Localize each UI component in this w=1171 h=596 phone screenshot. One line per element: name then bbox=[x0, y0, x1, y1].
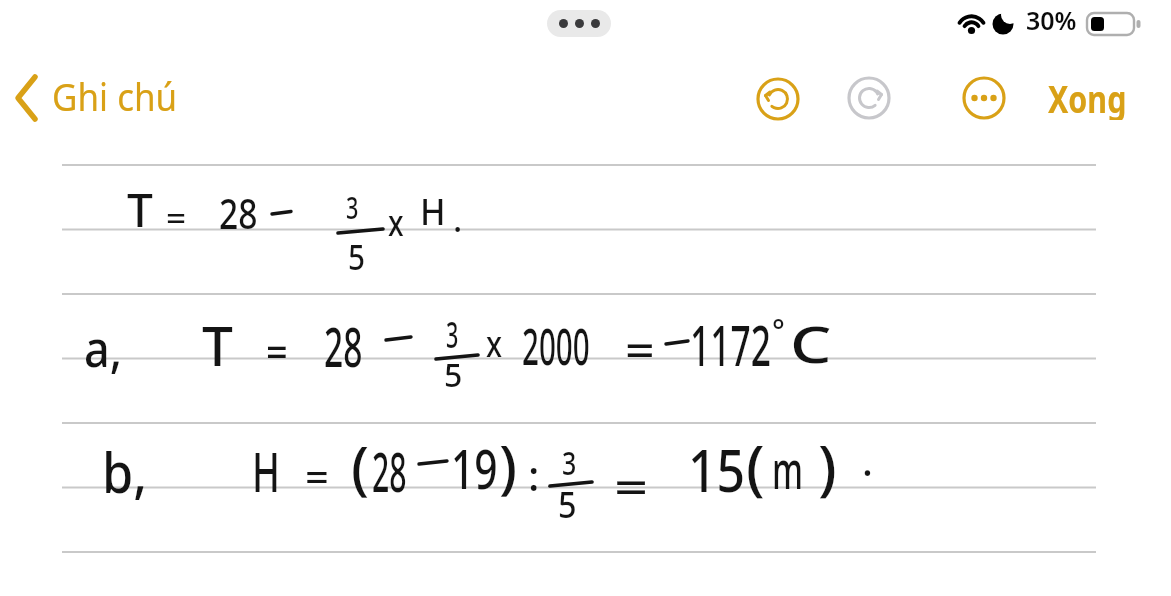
staticText: 5 bbox=[348, 233, 366, 281]
staticText: C bbox=[790, 308, 832, 377]
staticText: ( bbox=[746, 425, 765, 507]
staticText: = bbox=[625, 318, 655, 381]
staticText: ° bbox=[772, 310, 785, 351]
button[interactable] bbox=[847, 76, 891, 120]
staticText: 5 bbox=[558, 480, 577, 529]
button[interactable] bbox=[756, 77, 800, 121]
staticText: = bbox=[266, 322, 289, 379]
staticText: Xong bbox=[1048, 72, 1126, 120]
staticText: = bbox=[166, 196, 187, 240]
button[interactable]: Xong bbox=[1040, 72, 1140, 120]
staticText: m bbox=[772, 433, 803, 504]
staticText: ) bbox=[499, 426, 518, 505]
staticText: x bbox=[388, 198, 404, 247]
staticText: x bbox=[486, 319, 502, 368]
staticText: 15 bbox=[688, 430, 746, 509]
staticText: 5 bbox=[444, 353, 463, 397]
staticText: 28 bbox=[219, 185, 257, 241]
staticText: H bbox=[252, 433, 281, 508]
staticText: a, bbox=[84, 314, 123, 382]
staticText: 30% bbox=[1026, 3, 1077, 37]
staticText: . bbox=[453, 196, 463, 242]
staticText: 3 bbox=[346, 186, 359, 228]
staticText: 28 bbox=[372, 433, 407, 508]
staticText: T bbox=[127, 178, 153, 241]
staticText: H bbox=[420, 187, 446, 236]
staticText: 1172 bbox=[690, 305, 771, 383]
staticText: 28 bbox=[324, 308, 362, 383]
staticText: . bbox=[862, 433, 873, 487]
staticText: 19 bbox=[451, 430, 498, 505]
staticText: 3 bbox=[446, 310, 459, 359]
staticText: T bbox=[202, 307, 233, 382]
staticText: : bbox=[528, 446, 540, 503]
button[interactable]: Ghi chú bbox=[10, 68, 190, 124]
staticText: = bbox=[614, 455, 649, 518]
staticText: 2000 bbox=[522, 310, 590, 379]
button[interactable] bbox=[962, 76, 1006, 120]
staticText: b, bbox=[102, 433, 148, 509]
staticText: Ghi chú bbox=[52, 70, 178, 122]
staticText: 3 bbox=[562, 441, 577, 485]
staticText: = bbox=[305, 450, 329, 502]
staticText: ( bbox=[351, 427, 370, 506]
staticText: ) bbox=[818, 425, 837, 507]
